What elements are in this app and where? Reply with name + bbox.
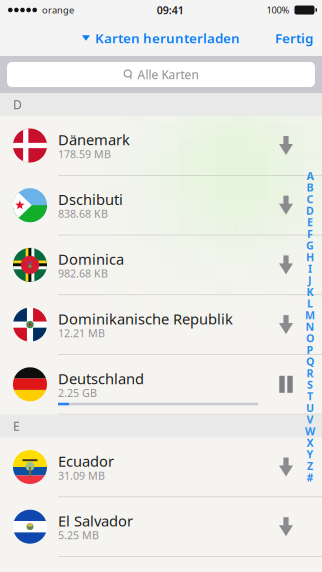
staticText: R bbox=[306, 366, 313, 380]
staticText: O bbox=[306, 331, 314, 345]
button[interactable]: Ecuador bbox=[0, 437, 322, 496]
staticText: Dominica bbox=[58, 249, 124, 269]
staticText: 178.59 MB bbox=[58, 147, 111, 161]
staticText: Q bbox=[306, 354, 314, 368]
staticText: Y bbox=[306, 447, 313, 461]
staticText: P bbox=[306, 343, 313, 357]
staticText: Karten herunterladen bbox=[95, 29, 240, 47]
staticText: # bbox=[306, 470, 313, 484]
staticText: Alle Karten bbox=[137, 66, 198, 82]
staticText: T bbox=[307, 389, 313, 403]
staticText: D bbox=[13, 96, 22, 112]
staticText: X bbox=[306, 435, 313, 450]
staticText: W bbox=[305, 424, 315, 438]
staticText: 100% bbox=[266, 4, 289, 16]
staticText: Dschibuti bbox=[58, 190, 123, 209]
staticText: orange bbox=[42, 4, 74, 16]
staticText: El Salvador bbox=[58, 511, 133, 531]
button[interactable]: Dschibuti bbox=[0, 176, 322, 235]
staticText: F bbox=[307, 227, 313, 241]
staticText: N bbox=[305, 319, 314, 334]
staticText: A bbox=[306, 169, 313, 183]
button[interactable]: Karten herunterladen bbox=[82, 29, 240, 47]
button[interactable]: Dominica bbox=[0, 235, 322, 294]
staticText: K bbox=[306, 285, 313, 299]
button[interactable]: El Salvador bbox=[0, 497, 322, 556]
staticText: C bbox=[306, 192, 313, 206]
button[interactable]: Alle Karten bbox=[7, 62, 315, 87]
button[interactable]: Fertig bbox=[275, 29, 313, 47]
staticText: Dominikanische Republik bbox=[58, 309, 233, 328]
staticText: S bbox=[307, 377, 313, 392]
staticText: V bbox=[306, 412, 313, 426]
staticText: G bbox=[306, 238, 314, 252]
staticText: E bbox=[13, 418, 20, 434]
staticText: 982.68 KB bbox=[58, 266, 108, 280]
staticText: 838.68 KB bbox=[58, 207, 108, 221]
staticText: Z bbox=[307, 459, 313, 473]
staticText: 12.21 MB bbox=[58, 326, 105, 340]
staticText: 31.09 MB bbox=[58, 468, 105, 483]
staticText: 5.25 MB bbox=[58, 528, 99, 542]
staticText: B bbox=[306, 180, 313, 194]
staticText: L bbox=[307, 296, 313, 310]
button[interactable]: Dominikanische Republik bbox=[0, 295, 322, 354]
button[interactable]: Section index bbox=[305, 170, 315, 483]
staticText: 2.25 GB bbox=[58, 386, 97, 400]
staticText: Dänemark bbox=[58, 130, 130, 149]
staticText: Fertig bbox=[275, 29, 313, 47]
staticText: D bbox=[306, 203, 314, 218]
staticText: M bbox=[305, 308, 315, 322]
staticText: Ecuador bbox=[58, 451, 114, 471]
staticText: E bbox=[307, 215, 313, 229]
staticText: Deutschland bbox=[58, 369, 144, 388]
button[interactable]: Dänemark bbox=[0, 116, 322, 175]
staticText: J bbox=[308, 273, 312, 287]
staticText: I bbox=[308, 261, 312, 276]
staticText: H bbox=[306, 250, 314, 264]
staticText: 09:41 bbox=[157, 3, 184, 17]
button[interactable]: Deutschland bbox=[0, 355, 322, 414]
staticText: U bbox=[306, 401, 314, 415]
